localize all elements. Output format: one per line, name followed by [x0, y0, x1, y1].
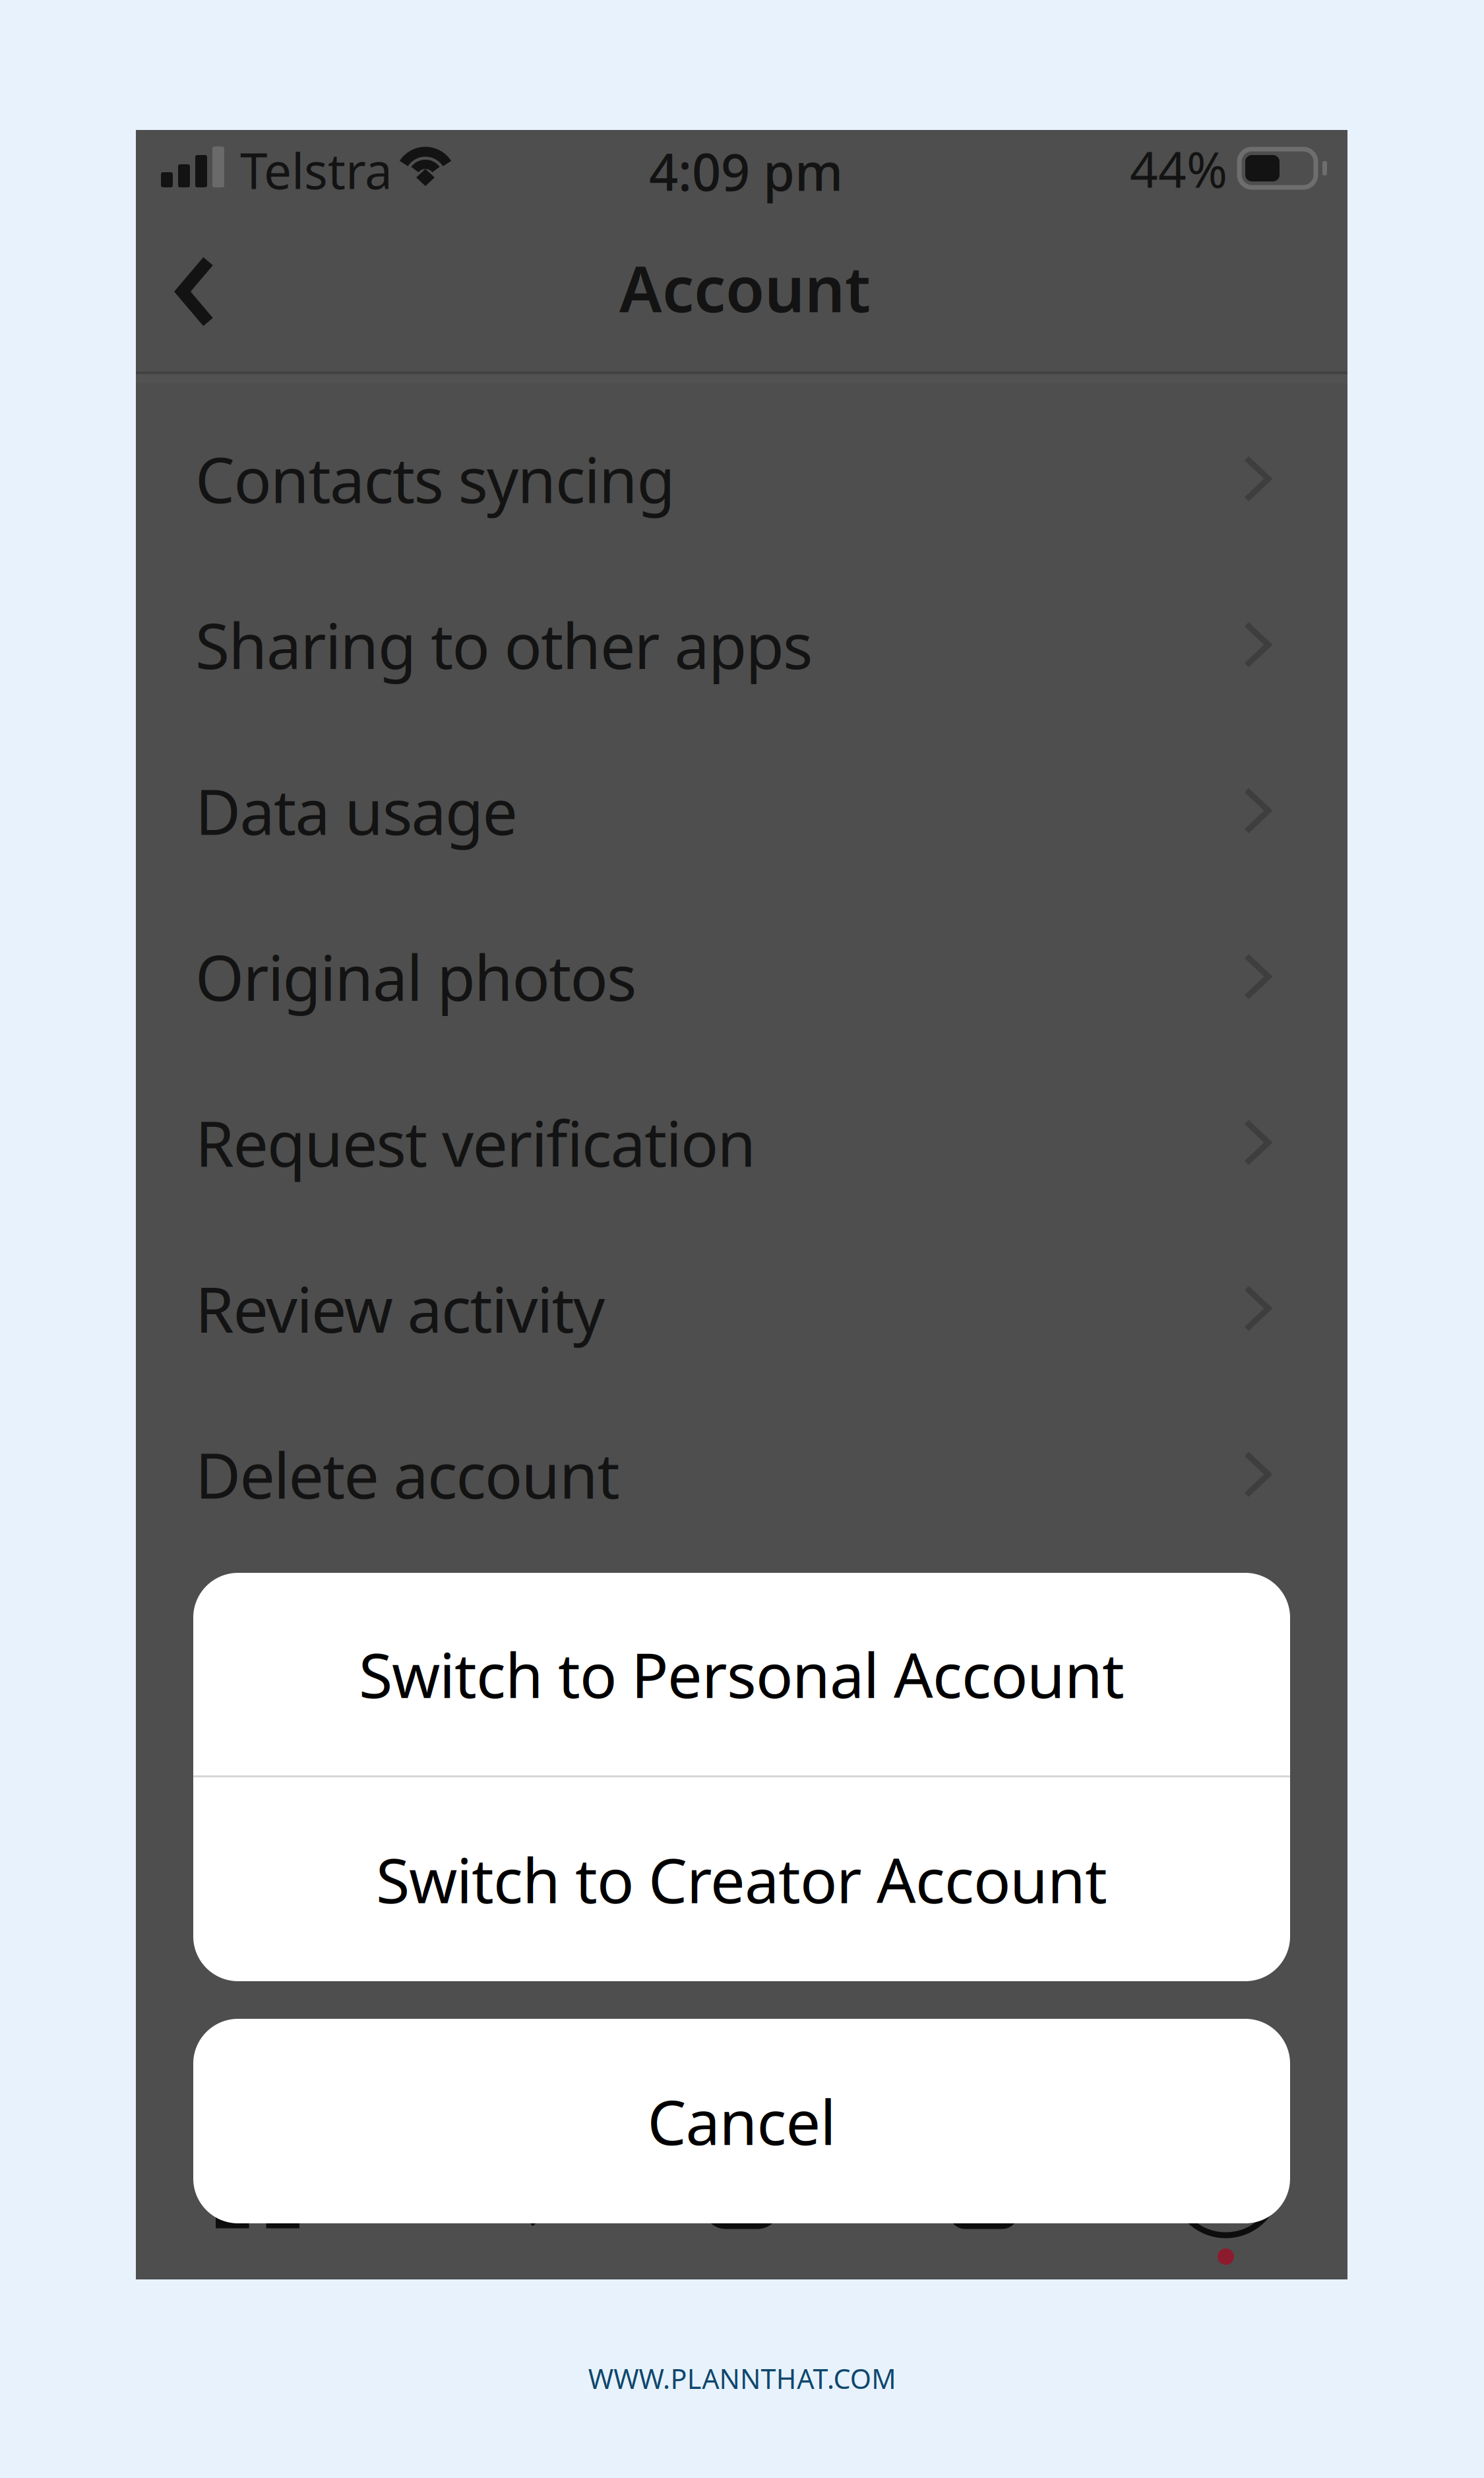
button[interactable]: Contacts syncing — [136, 396, 1347, 562]
button[interactable]: Switch to Creator Account — [193, 1777, 1290, 1981]
staticText: Switch to Personal Account — [359, 1633, 1125, 1715]
staticText: Original photos — [195, 935, 636, 1018]
button[interactable]: Request verification — [136, 1060, 1347, 1225]
button[interactable]: Original photos — [136, 894, 1347, 1060]
button[interactable]: Switch to Personal Account — [193, 1573, 1290, 1775]
staticText: 44% — [1130, 136, 1227, 201]
staticText: Cancel — [647, 2080, 836, 2162]
button[interactable]: Delete account — [136, 1391, 1347, 1557]
staticText: Delete account — [195, 1433, 620, 1516]
staticText: Telstra — [240, 137, 392, 203]
button[interactable]: Shop — [863, 2097, 1105, 2229]
button[interactable]: Home — [137, 2097, 379, 2229]
button[interactable]: Sharing to other apps — [136, 562, 1347, 728]
staticText: Data usage — [195, 769, 517, 852]
staticText: 4:09 pm — [649, 137, 843, 205]
button[interactable]: Cancel — [193, 2019, 1290, 2223]
staticText: Sharing to other apps — [195, 603, 813, 686]
staticText: Review activity — [195, 1267, 605, 1350]
staticText: Switch to Creator Account — [376, 1838, 1107, 1920]
button[interactable]: Review activity — [136, 1225, 1347, 1391]
button[interactable]: Profile — [1105, 2097, 1347, 2229]
staticText: WWW.PLANNTHAT.COM — [588, 2360, 896, 2397]
button[interactable]: Data usage — [136, 728, 1347, 894]
button[interactable]: Reels — [621, 2097, 863, 2229]
button[interactable]: Search — [379, 2097, 621, 2229]
button[interactable]: Back — [136, 236, 249, 353]
staticText: Account — [619, 246, 871, 330]
staticText: Request verification — [195, 1101, 756, 1184]
staticText: Contacts syncing — [195, 437, 675, 520]
